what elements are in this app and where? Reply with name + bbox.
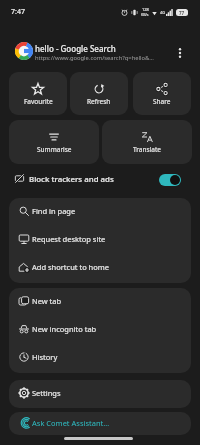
staticText: KB/s	[141, 12, 149, 17]
staticText: Request desktop site	[32, 234, 106, 244]
staticText: New incognito tab	[32, 324, 97, 334]
staticText: New tab	[32, 296, 62, 306]
staticText: 77	[179, 10, 185, 16]
button[interactable]: Add shortcut to home	[9, 254, 191, 282]
button[interactable]: Request desktop site	[9, 226, 191, 254]
button[interactable]: New incognito tab	[9, 316, 191, 344]
staticText: Ask Comet Assistant…	[32, 418, 110, 428]
staticText: 4G	[160, 10, 166, 15]
button[interactable]: Block trackers and ads	[0, 166, 200, 194]
staticText: Favourite	[24, 97, 53, 106]
button[interactable]: Favourite	[9, 72, 67, 115]
staticText: Translate	[133, 145, 161, 154]
button[interactable]: New tab	[9, 288, 191, 316]
button[interactable]: Settings	[9, 380, 191, 408]
button[interactable]: History	[9, 344, 191, 372]
staticText: Add shortcut to home	[32, 262, 110, 272]
staticText: Block trackers and ads	[29, 174, 114, 185]
staticText: 128	[142, 7, 149, 12]
button[interactable]: Find in page	[9, 198, 191, 226]
staticText: Settings	[32, 388, 61, 398]
button[interactable]: Refresh	[70, 72, 128, 115]
staticText: Refresh	[87, 97, 111, 106]
button[interactable]: More options	[169, 42, 191, 64]
button[interactable]: Translate	[102, 120, 192, 164]
button[interactable]: Share	[133, 72, 191, 115]
staticText: Summarise	[37, 145, 72, 154]
staticText: History	[32, 352, 58, 362]
staticText: 7:47	[11, 7, 25, 17]
staticText: Share	[153, 97, 171, 106]
staticText: Find in page	[32, 206, 76, 216]
staticText: https://www.google.com/search?q=hello&…	[35, 54, 157, 62]
staticText: hello - Google Search	[35, 43, 116, 54]
button[interactable]: Summarise	[9, 120, 99, 164]
button[interactable]: Ask Comet Assistant…	[9, 412, 191, 435]
